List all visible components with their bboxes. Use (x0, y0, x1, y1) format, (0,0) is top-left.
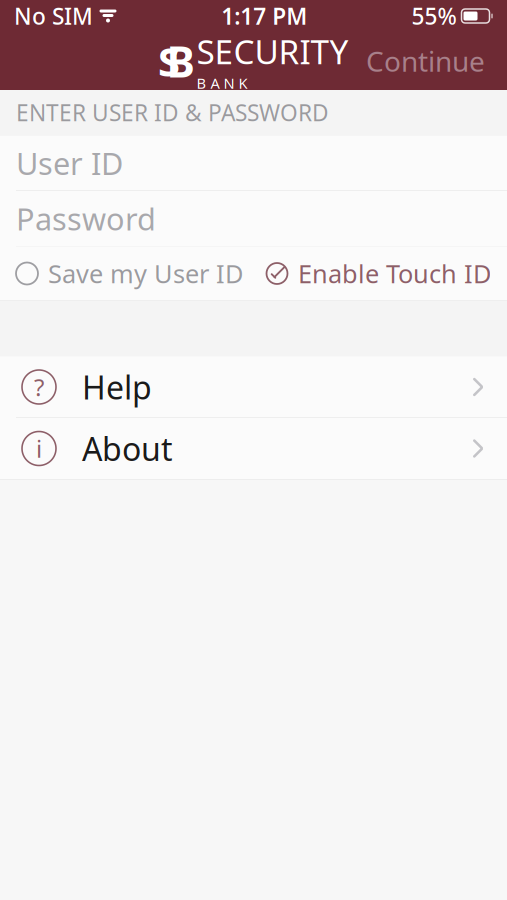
button[interactable]: Save my User ID (16, 249, 243, 298)
button[interactable]: ? (0, 356, 507, 417)
button[interactable]: Password (0, 191, 507, 246)
staticText: ENTER USER ID & PASSWORD (16, 97, 329, 127)
staticText: S (158, 34, 180, 87)
staticText: Save my User ID (48, 257, 243, 290)
staticText: Enable Touch ID (298, 257, 491, 290)
staticText: Password (16, 198, 156, 239)
staticText: B A N K (196, 73, 247, 93)
staticText: No SIM (14, 1, 93, 31)
button[interactable]: i (0, 418, 507, 479)
staticText: Help (82, 366, 152, 408)
staticText: 55% (411, 1, 456, 31)
button[interactable]: User ID (0, 135, 507, 190)
staticText: About (82, 427, 173, 470)
button[interactable]: Enable Touch ID (265, 249, 491, 298)
staticText: 1:17 PM (221, 1, 307, 31)
staticText: ? (34, 371, 44, 403)
staticText: Continue (366, 42, 485, 80)
button[interactable]: Continue (352, 34, 499, 88)
staticText: SECURITY (196, 29, 348, 73)
staticText: i (36, 433, 42, 464)
staticText: B (166, 33, 194, 89)
staticText: User ID (16, 143, 123, 183)
